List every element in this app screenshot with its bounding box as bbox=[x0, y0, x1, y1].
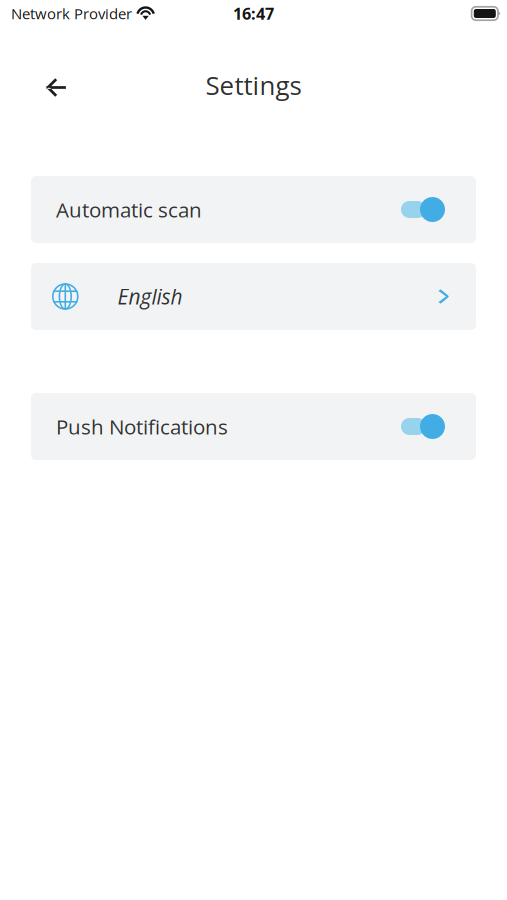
staticText: English bbox=[118, 282, 183, 311]
button[interactable]: Push Notifications bbox=[31, 393, 476, 460]
button[interactable]: English bbox=[31, 263, 476, 330]
staticText: Push Notifications bbox=[56, 412, 228, 440]
staticText: 16:47 bbox=[233, 2, 274, 25]
staticText: Network Provider bbox=[11, 3, 132, 24]
button[interactable]: Automatic scan bbox=[31, 176, 476, 243]
staticText: Settings bbox=[205, 67, 301, 103]
staticText: Automatic scan bbox=[56, 195, 202, 223]
button[interactable]: Back bbox=[33, 60, 79, 109]
